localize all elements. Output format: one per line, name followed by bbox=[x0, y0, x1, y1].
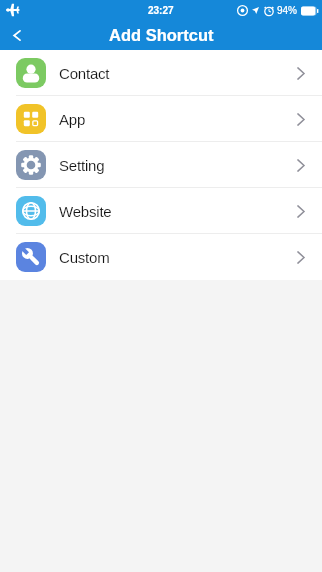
button[interactable]: Custom bbox=[0, 234, 322, 280]
staticText: Setting bbox=[59, 157, 105, 174]
button[interactable]: App bbox=[0, 96, 322, 142]
staticText: 23:27 bbox=[148, 5, 174, 16]
staticText: Website bbox=[59, 203, 112, 220]
button[interactable]: Contact bbox=[0, 50, 322, 96]
staticText: Contact bbox=[59, 65, 110, 82]
staticText: Add Shortcut bbox=[109, 26, 214, 44]
staticText: App bbox=[59, 111, 86, 128]
staticText: 94% bbox=[277, 5, 298, 16]
staticText: Custom bbox=[59, 249, 110, 266]
button[interactable]: Setting bbox=[0, 142, 322, 188]
button[interactable] bbox=[0, 20, 40, 50]
button[interactable]: Website bbox=[0, 188, 322, 234]
